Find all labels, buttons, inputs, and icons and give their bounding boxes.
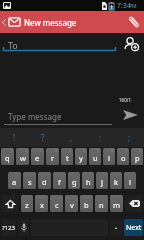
button[interactable]: Next [124,219,143,236]
staticText: Type message [8,111,62,122]
staticText: x [40,200,44,210]
button[interactable]: , [57,128,86,147]
staticText: 5 [69,148,72,153]
staticText: m [113,200,121,210]
staticText: Next [126,223,142,233]
staticText: g [72,177,77,187]
staticText: h [86,177,91,187]
button[interactable]: Voice input [18,219,29,236]
button[interactable]: j [96,172,108,189]
staticText: PM [129,3,137,10]
staticText: d [42,177,47,187]
staticText: ; [128,132,131,143]
button[interactable]: ?123 [1,219,16,236]
button[interactable]: 3 [31,148,44,165]
button[interactable]: Send message [116,104,144,126]
staticText: . [115,220,118,231]
staticText: o [121,153,126,163]
button[interactable]: 8 [103,148,115,165]
button[interactable]: Shift [1,195,19,212]
button[interactable]: Add recipient [118,33,144,55]
button[interactable]: ! [0,128,28,147]
button[interactable]: x [35,195,48,212]
staticText: l [129,177,131,187]
staticText: f [58,177,61,187]
button[interactable]: . [110,219,122,236]
button[interactable]: : [86,128,115,147]
staticText: j [101,177,103,187]
staticText: w [20,153,26,163]
button[interactable]: ? [28,128,57,147]
staticText: 9 [125,148,128,153]
button[interactable]: c [50,195,63,212]
button[interactable]: 2 [16,148,29,165]
staticText: n [99,200,104,210]
button[interactable]: ; [115,128,144,147]
staticText: 2 [25,148,28,153]
staticText: r [51,153,55,163]
button[interactable]: 0 [131,148,143,165]
button[interactable]: l [124,172,136,189]
staticText: p [135,153,140,163]
button[interactable]: Backspace [125,195,143,212]
staticText: s [28,177,32,187]
staticText: To [8,39,18,51]
button[interactable]: s [23,172,36,189]
staticText: t [66,153,69,163]
button[interactable]: h [82,172,94,189]
staticText: 3 [40,148,43,153]
staticText: c [55,200,59,210]
button[interactable]: z [21,195,33,212]
button[interactable]: b [80,195,93,212]
staticText: New message [24,17,77,28]
button[interactable]: 9 [117,148,129,165]
staticText: 160/1 [119,97,131,103]
button[interactable]: m [110,195,123,212]
staticText: b [84,200,89,210]
button[interactable]: 7 [89,148,101,165]
staticText: ?123 [2,224,15,232]
staticText: ? [41,132,45,143]
button[interactable]: k [110,172,122,189]
button[interactable]: g [68,172,80,189]
staticText: i [108,153,110,163]
staticText: y [79,153,83,163]
button[interactable]: d [38,172,51,189]
button[interactable]: n [95,195,108,212]
staticText: 8 [111,148,114,153]
button[interactable]: Attach [123,11,144,33]
button[interactable]: f [53,172,66,189]
button[interactable]: a [8,172,21,189]
button[interactable]: 5 [61,148,73,165]
button[interactable]: 1 [1,148,14,165]
staticText: 1 [10,148,13,153]
staticText: q [5,153,10,163]
staticText: e [35,153,40,163]
staticText: z [25,200,29,210]
staticText: 7 [97,148,100,153]
staticText: ! [13,132,16,143]
button[interactable]: 4 [46,148,59,165]
staticText: k [114,177,119,187]
staticText: , [70,132,73,143]
staticText: a [12,177,17,187]
staticText: v [70,200,74,210]
button[interactable]: v [65,195,78,212]
staticText: : [99,132,102,143]
staticText: 7:34 [117,1,131,11]
button[interactable]: Navigate up [0,11,8,33]
staticText: 4 [55,148,58,153]
staticText: u [93,153,98,163]
staticText: 6 [83,148,86,153]
button[interactable]: 6 [75,148,87,165]
staticText: 0 [139,148,142,153]
